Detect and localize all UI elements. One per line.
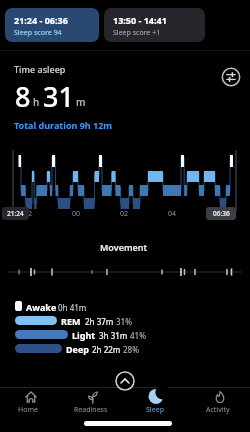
staticText: Sleep score 94 xyxy=(14,28,62,38)
button[interactable]: 13:50 - 14:41 xyxy=(104,8,205,42)
staticText: Home xyxy=(18,405,38,415)
button[interactable]: Sleep xyxy=(125,388,188,418)
staticText: Deep xyxy=(66,343,90,355)
staticText: 00 xyxy=(72,209,81,219)
button[interactable]: Home xyxy=(0,388,62,418)
staticText: 21:24 - 06:36 xyxy=(14,14,68,26)
staticText: REM xyxy=(61,315,81,327)
staticText: Total duration 9h 12m xyxy=(14,119,113,131)
button[interactable]: Readiness xyxy=(62,388,125,418)
staticText: Movement xyxy=(100,241,148,253)
staticText: 41% xyxy=(130,330,146,341)
staticText: 28% xyxy=(123,344,139,355)
staticText: 31% xyxy=(116,316,132,327)
staticText: 8 xyxy=(15,78,31,115)
staticText: 22 xyxy=(24,209,33,219)
button[interactable]: Activity xyxy=(188,388,250,418)
staticText: 02 xyxy=(120,209,129,219)
staticText: m xyxy=(76,95,86,109)
staticText: 0h 41m xyxy=(58,302,87,313)
button[interactable] xyxy=(220,66,242,88)
staticText: 21:24 xyxy=(7,209,24,218)
staticText: 2h 37m xyxy=(85,316,114,327)
staticText: 06:36 xyxy=(213,209,230,218)
button[interactable]: 21:24 - 06:36 xyxy=(5,8,99,42)
staticText: 06 xyxy=(217,209,226,219)
staticText: Sleep score +1 xyxy=(113,28,161,38)
staticText: 13:50 - 14:41 xyxy=(113,14,167,26)
staticText: h xyxy=(33,95,40,109)
staticText: 31 xyxy=(43,78,74,115)
staticText: 3h 31m xyxy=(99,330,128,341)
staticText: Awake xyxy=(26,301,57,313)
staticText: Sleep xyxy=(146,405,165,415)
staticText: Time asleep xyxy=(14,63,66,75)
staticText: Readiness xyxy=(74,405,108,415)
staticText: Activity xyxy=(206,405,230,415)
button[interactable] xyxy=(115,371,135,391)
staticText: 04 xyxy=(168,209,177,219)
staticText: Light xyxy=(72,329,96,341)
staticText: 2h 22m xyxy=(92,344,121,355)
